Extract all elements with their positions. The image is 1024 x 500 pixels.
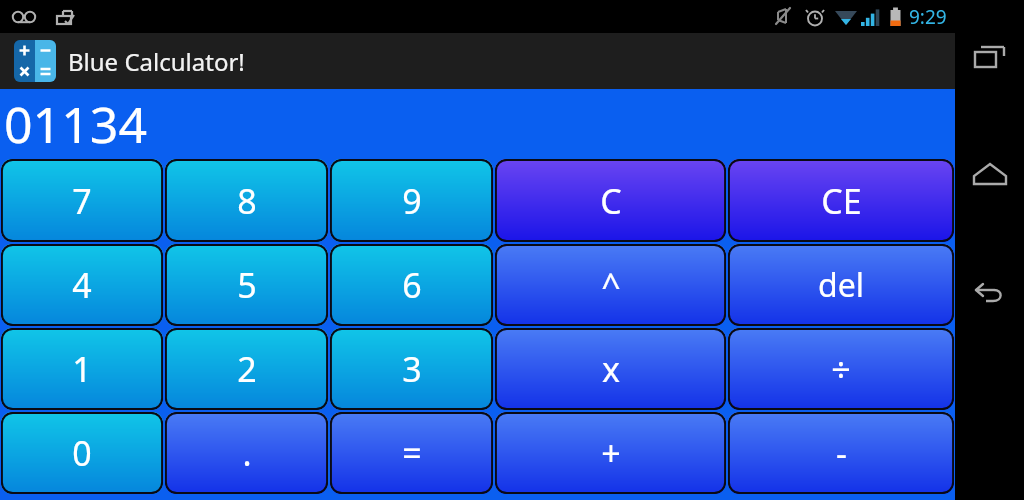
staticText: del [818,263,864,307]
button[interactable]: x [495,328,726,410]
staticText: 6 [402,262,422,308]
button[interactable]: = [330,412,493,494]
button[interactable]: 1 [1,328,163,410]
staticText: - [836,430,847,476]
staticText: C [600,178,622,224]
staticText: + [601,430,621,476]
button[interactable]: CE [728,159,954,242]
button[interactable]: ^ [495,244,726,326]
button[interactable]: 7 [1,159,163,242]
staticText: x [602,346,620,392]
button[interactable]: . [165,412,328,494]
button[interactable]: 2 [165,328,328,410]
staticText: ÷ [831,346,851,392]
button[interactable]: del [728,244,954,326]
staticText: CE [821,178,862,224]
staticText: 4 [72,262,92,308]
button[interactable]: 4 [1,244,163,326]
button[interactable]: ÷ [728,328,954,410]
button[interactable]: 9 [330,159,493,242]
staticText: ^ [601,262,621,308]
staticText: Blue Calculator! [68,45,245,78]
button[interactable]: + [495,412,726,494]
button[interactable]: Home [962,146,1018,202]
staticText: 9:29 [909,4,947,30]
staticText: 3 [402,346,422,392]
staticText: = [402,430,422,476]
staticText: 7 [72,178,92,224]
staticText: 2 [237,346,257,392]
button[interactable]: 6 [330,244,493,326]
staticText: . [242,430,252,476]
button[interactable]: - [728,412,954,494]
staticText: 01134 [4,90,147,158]
button[interactable]: 5 [165,244,328,326]
staticText: 9 [402,178,422,224]
button[interactable]: Recent apps [962,28,1018,84]
staticText: 8 [237,178,257,224]
button[interactable]: 0 [1,412,163,494]
button[interactable]: C [495,159,726,242]
staticText: 1 [72,346,92,392]
staticText: 5 [237,262,257,308]
button[interactable]: 8 [165,159,328,242]
button[interactable]: 3 [330,328,493,410]
staticText: 0 [72,430,92,476]
button[interactable]: Back [962,264,1018,320]
